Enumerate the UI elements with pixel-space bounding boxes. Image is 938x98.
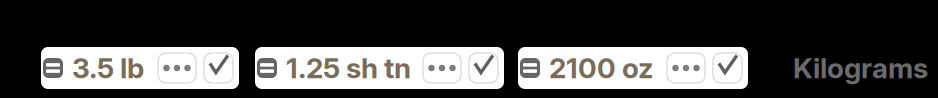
staticText: Kilograms [793, 51, 928, 85]
staticText: 3.5 lb [72, 51, 144, 85]
button[interactable]: Accept [469, 53, 498, 83]
button[interactable]: Accept [713, 53, 742, 83]
button[interactable]: Accept [204, 53, 233, 83]
button[interactable]: More options [667, 53, 705, 83]
staticText: 2100 oz [549, 51, 653, 85]
staticText: 1.25 sh tn [286, 51, 411, 85]
button[interactable]: More options [158, 53, 196, 83]
button[interactable]: More options [423, 53, 461, 83]
